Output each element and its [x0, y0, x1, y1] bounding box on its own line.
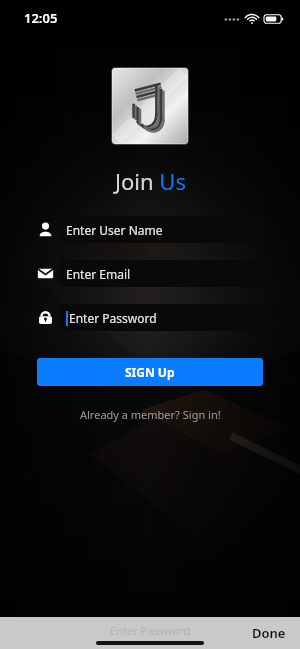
- other: Enter Password: [37, 309, 54, 326]
- button[interactable]: Done: [248, 620, 290, 646]
- staticText: Done: [252, 624, 286, 642]
- staticText: Already a member? Sign in!: [80, 407, 221, 422]
- staticText: Enter Password: [69, 310, 157, 326]
- staticText: Enter User Name: [66, 222, 163, 238]
- staticText: 12:05: [24, 9, 58, 27]
- button[interactable]: SIGN Up: [37, 358, 263, 386]
- button[interactable]: Enter Password: [37, 304, 263, 331]
- staticText: Enter Password: [110, 623, 191, 638]
- button[interactable]: [112, 68, 188, 144]
- button[interactable]: Enter Email: [37, 260, 263, 287]
- staticText: Join Us: [115, 166, 186, 196]
- other: Enter Email: [37, 265, 54, 282]
- staticText: SIGN Up: [125, 364, 175, 380]
- other: Enter User Name: [37, 221, 54, 238]
- staticText: Enter Email: [66, 266, 131, 282]
- button[interactable]: Already a member? Sign in!: [72, 404, 229, 425]
- button[interactable]: Enter User Name: [37, 216, 263, 243]
